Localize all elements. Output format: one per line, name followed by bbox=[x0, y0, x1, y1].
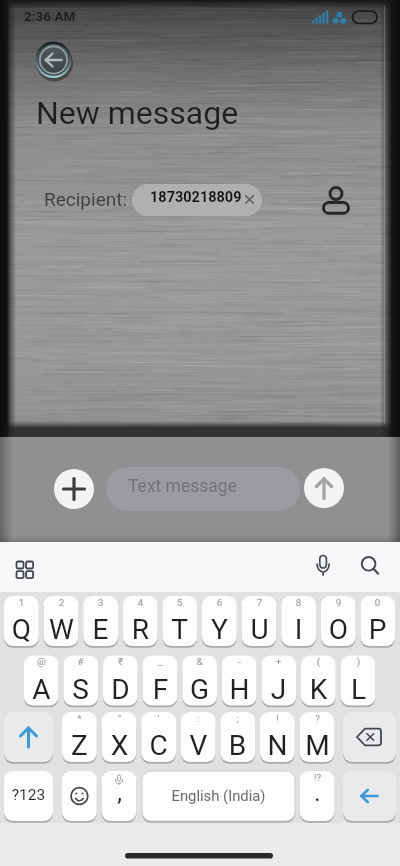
staticText: O bbox=[321, 613, 356, 646]
staticText: 8 bbox=[281, 597, 316, 608]
staticText: _ bbox=[143, 656, 178, 667]
staticText: : bbox=[181, 713, 216, 724]
staticText: " bbox=[102, 713, 137, 724]
staticText: !? bbox=[300, 772, 335, 783]
staticText: New message bbox=[36, 94, 239, 132]
staticText: Q bbox=[4, 613, 39, 646]
staticText: B bbox=[220, 729, 255, 762]
staticText: 1 bbox=[4, 597, 39, 608]
staticText: ( bbox=[301, 656, 336, 667]
staticText: F bbox=[143, 673, 178, 706]
staticText: U bbox=[242, 613, 277, 646]
staticText: D bbox=[103, 673, 138, 706]
staticText: P bbox=[360, 613, 395, 646]
staticText: G bbox=[182, 673, 217, 706]
staticText: @ bbox=[24, 656, 59, 667]
staticText: ! bbox=[260, 713, 295, 724]
staticText: A bbox=[24, 673, 59, 706]
staticText: 0 bbox=[360, 597, 395, 608]
staticText: ) bbox=[341, 656, 376, 667]
staticText: H bbox=[222, 673, 257, 706]
staticText: 4 bbox=[123, 597, 158, 608]
staticText: M bbox=[300, 729, 335, 762]
staticText: 3 bbox=[83, 597, 118, 608]
staticText: 18730218809 bbox=[150, 189, 242, 206]
staticText: Text message bbox=[128, 476, 237, 497]
staticText: J bbox=[261, 673, 296, 706]
staticText: E bbox=[83, 613, 118, 646]
staticText: ?123 bbox=[4, 786, 53, 804]
staticText: 2 bbox=[44, 597, 79, 608]
staticText: & bbox=[182, 656, 217, 667]
staticText: ; bbox=[220, 713, 255, 724]
staticText: S bbox=[63, 673, 98, 706]
staticText: C bbox=[141, 729, 176, 762]
staticText: # bbox=[63, 656, 98, 667]
staticText: 5 bbox=[162, 597, 197, 608]
staticText: ? bbox=[300, 713, 335, 724]
staticText: I bbox=[281, 613, 316, 646]
staticText: R bbox=[123, 613, 158, 646]
staticText: . bbox=[300, 779, 335, 807]
staticText: ' bbox=[141, 713, 176, 724]
staticText: , bbox=[102, 779, 137, 807]
staticText: V bbox=[181, 729, 216, 762]
staticText: 9 bbox=[321, 597, 356, 608]
staticText: W bbox=[44, 613, 79, 646]
staticText: Z bbox=[62, 729, 97, 762]
staticText: X bbox=[102, 729, 137, 762]
staticText: Y bbox=[202, 613, 237, 646]
staticText: English (India) bbox=[142, 787, 295, 804]
staticText: - bbox=[222, 656, 257, 667]
staticText: * bbox=[62, 713, 97, 724]
staticText: + bbox=[261, 656, 296, 667]
staticText: L bbox=[341, 673, 376, 706]
staticText: N bbox=[260, 729, 295, 762]
staticText: Recipient: bbox=[44, 188, 128, 210]
staticText: T bbox=[162, 613, 197, 646]
staticText: 2:36 AM bbox=[24, 8, 76, 24]
staticText: ₹ bbox=[103, 656, 138, 667]
staticText: 7 bbox=[242, 597, 277, 608]
staticText: 6 bbox=[202, 597, 237, 608]
staticText: K bbox=[301, 673, 336, 706]
